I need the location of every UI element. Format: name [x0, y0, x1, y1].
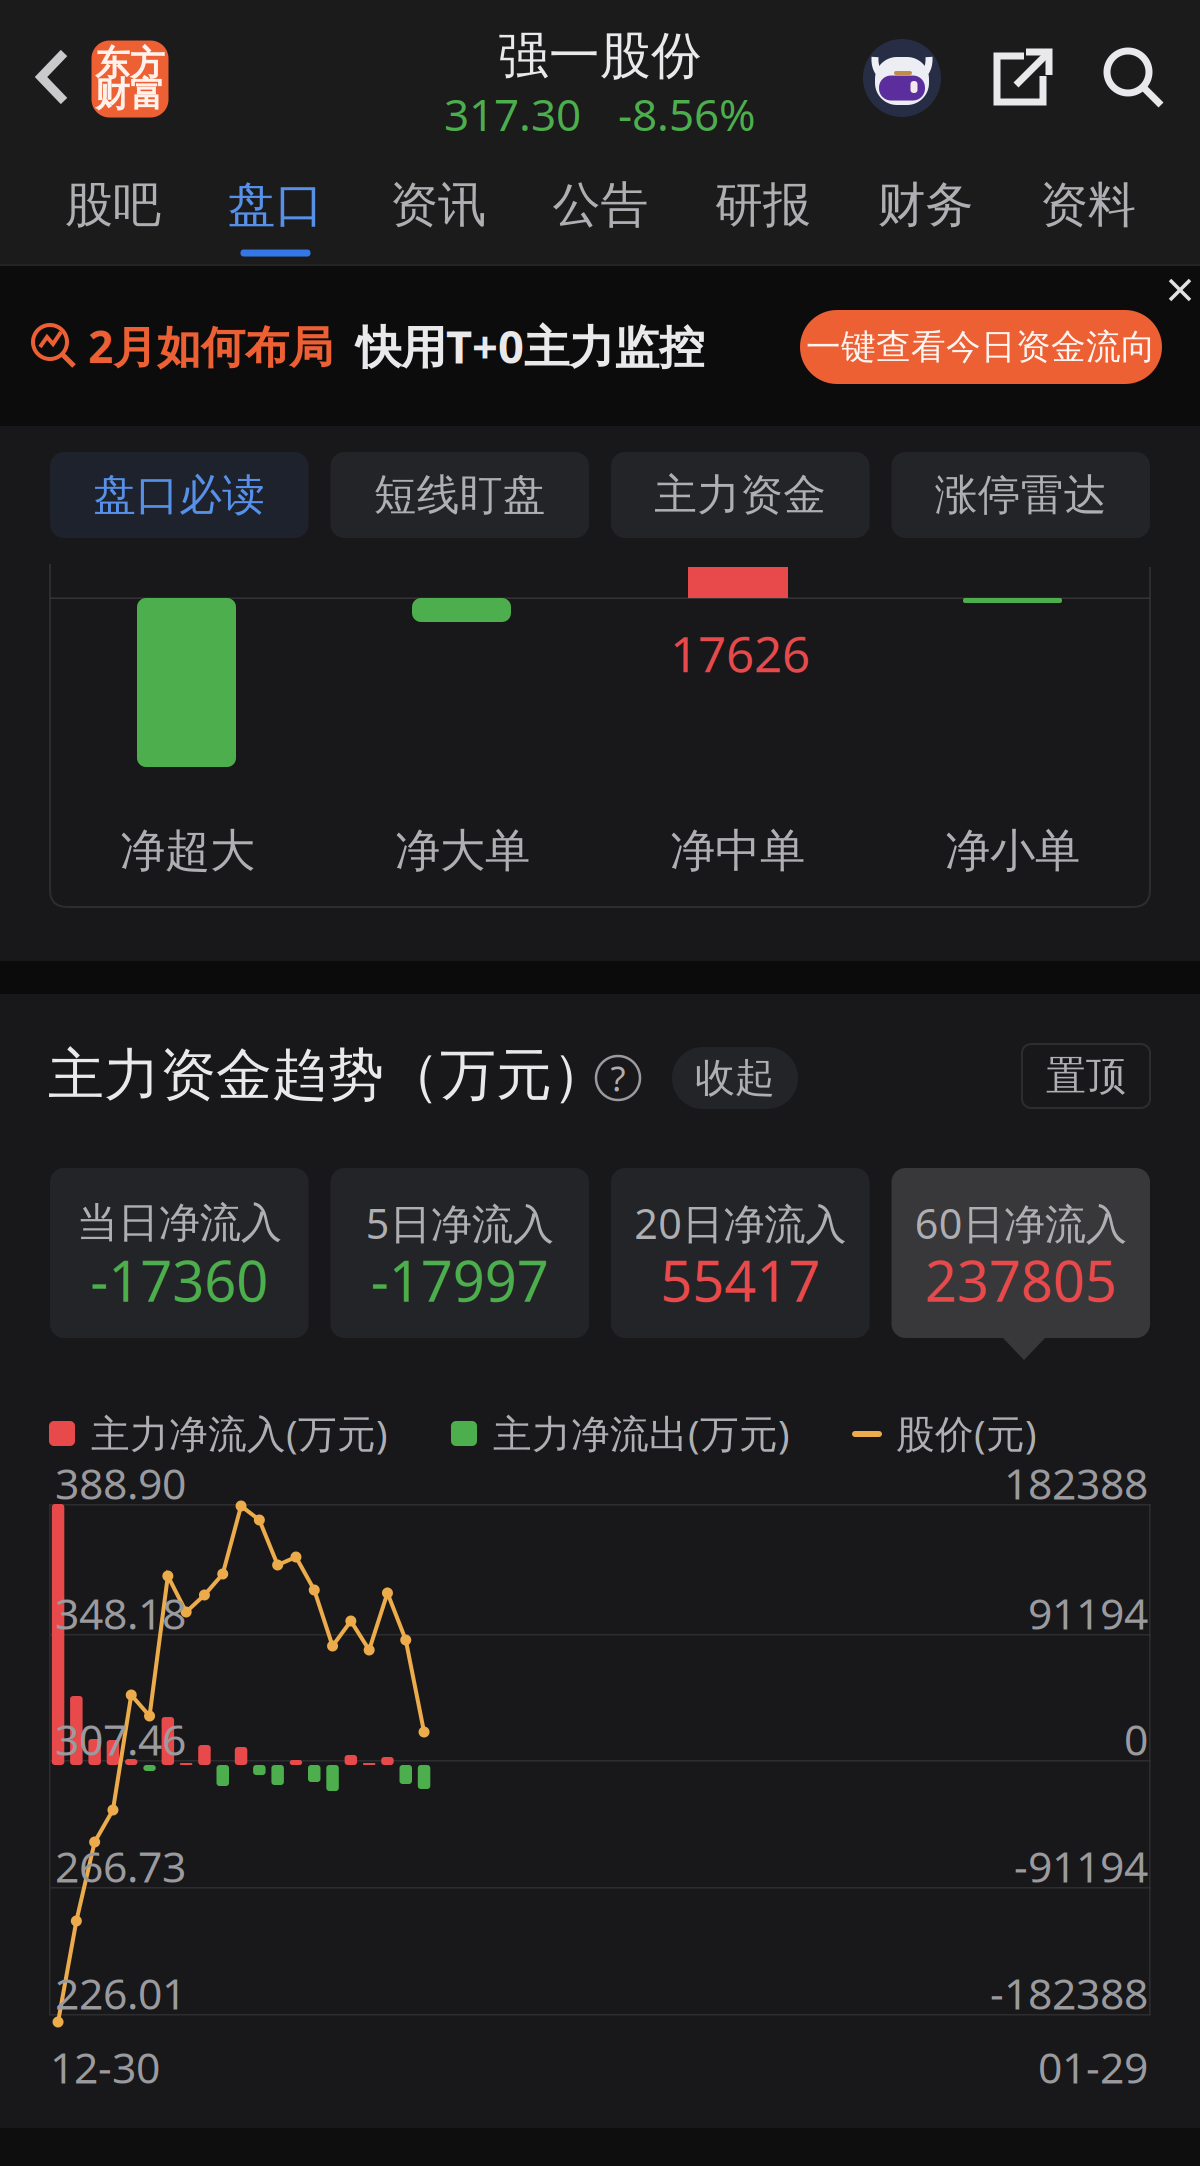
- staticText: -8.56%: [618, 85, 756, 143]
- button[interactable]: 收起: [672, 1047, 798, 1109]
- staticText: -91194: [1014, 1838, 1148, 1894]
- staticText: 237805: [925, 1243, 1117, 1317]
- button[interactable]: Back: [12, 17, 92, 137]
- staticText: 盘口: [227, 175, 323, 234]
- button[interactable]: Share: [972, 23, 1072, 133]
- staticText: 12-30: [50, 2039, 160, 2095]
- button[interactable]: 短线盯盘: [330, 452, 589, 538]
- staticText: 净超大: [120, 823, 255, 879]
- staticText: 20日净流入: [634, 1196, 846, 1250]
- staticText: 强一股份: [498, 25, 702, 87]
- button[interactable]: Help: [588, 1048, 648, 1108]
- button[interactable]: 涨停雷达: [891, 452, 1150, 538]
- staticText: 短线盯盘: [374, 469, 546, 521]
- staticText: 388.90: [55, 1455, 186, 1511]
- staticText: 股价(元): [896, 1407, 1037, 1459]
- button[interactable]: 资料: [1007, 152, 1169, 265]
- button[interactable]: 当日净流入: [50, 1168, 308, 1338]
- staticText: 净中单: [670, 823, 805, 879]
- staticText: 91194: [1028, 1585, 1148, 1641]
- staticText: 东方: [95, 42, 165, 85]
- staticText: 净小单: [945, 823, 1080, 879]
- button[interactable]: 盘口必读: [50, 452, 308, 538]
- button[interactable]: 5日净流入: [330, 1168, 589, 1338]
- staticText: 17626: [670, 620, 810, 686]
- staticText: 盘口必读: [93, 469, 265, 521]
- staticText: 财务: [877, 175, 973, 234]
- button[interactable]: Close banner: [1151, 262, 1200, 318]
- staticText: 当日净流入: [77, 1198, 282, 1248]
- button[interactable]: 盘口: [194, 152, 356, 265]
- staticText: 资料: [1040, 175, 1136, 234]
- button[interactable]: AI assistant: [852, 23, 952, 133]
- staticText: 5日净流入: [366, 1196, 554, 1250]
- staticText: 266.73: [55, 1838, 186, 1894]
- staticText: 一键查看今日资金流向: [806, 326, 1156, 368]
- staticText: 60日净流入: [915, 1196, 1127, 1250]
- button[interactable]: 资讯: [357, 152, 519, 265]
- staticText: 收起: [695, 1053, 775, 1102]
- staticText: 主力资金: [654, 469, 826, 521]
- staticText: 182388: [1004, 1455, 1148, 1511]
- button[interactable]: 置顶: [1022, 1044, 1150, 1108]
- button[interactable]: 股吧: [32, 152, 194, 265]
- staticText: 主力净流入(万元): [91, 1407, 388, 1459]
- button[interactable]: East Money home: [78, 24, 182, 134]
- staticText: -17997: [371, 1243, 549, 1317]
- staticText: 01-29: [1038, 2039, 1148, 2095]
- button[interactable]: 60日净流入: [891, 1168, 1150, 1338]
- staticText: 快用T+0主力监控: [356, 316, 704, 376]
- button[interactable]: 一键查看今日资金流向: [800, 310, 1162, 384]
- staticText: 2月如何布局: [88, 317, 333, 375]
- staticText: 主力净流出(万元): [493, 1407, 790, 1459]
- staticText: ?: [610, 1055, 625, 1101]
- staticText: 股吧: [65, 175, 161, 234]
- staticText: 公告: [552, 175, 648, 234]
- staticText: 0: [1124, 1711, 1148, 1767]
- staticText: 资讯: [390, 175, 486, 234]
- button[interactable]: 主力资金: [611, 452, 869, 538]
- staticText: -182388: [990, 1965, 1148, 2021]
- staticText: 307.46: [55, 1711, 186, 1767]
- staticText: 317.30: [444, 85, 581, 143]
- staticText: 净大单: [395, 823, 530, 879]
- staticText: 涨停雷达: [935, 469, 1107, 521]
- button[interactable]: 研报: [682, 152, 844, 265]
- staticText: 财富: [95, 73, 165, 116]
- staticText: 226.01: [55, 1965, 186, 2021]
- button[interactable]: 公告: [519, 152, 681, 265]
- staticText: 研报: [715, 175, 811, 234]
- staticText: 置顶: [1046, 1051, 1126, 1100]
- button[interactable]: Search: [1084, 23, 1184, 133]
- staticText: 55417: [660, 1243, 820, 1317]
- staticText: 348.18: [55, 1585, 186, 1641]
- staticText: -17360: [90, 1243, 268, 1317]
- button[interactable]: 财务: [844, 152, 1006, 265]
- button[interactable]: 20日净流入: [611, 1168, 869, 1338]
- staticText: 主力资金趋势（万元）: [48, 1041, 608, 1109]
